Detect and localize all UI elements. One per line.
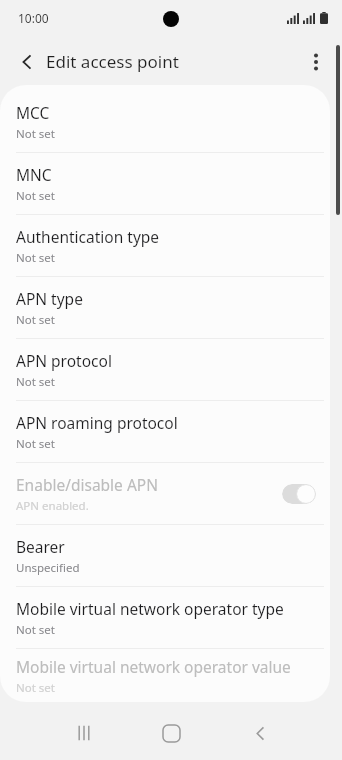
staticText: APN enabled. bbox=[16, 498, 89, 514]
staticText: Not set bbox=[16, 436, 55, 452]
staticText: Bearer bbox=[16, 536, 65, 557]
button[interactable]: APN protocol bbox=[0, 339, 330, 400]
button[interactable]: Mobile virtual network operator value bbox=[0, 649, 330, 702]
staticText: Not set bbox=[16, 312, 55, 328]
staticText: APN roaming protocol bbox=[16, 412, 178, 433]
button[interactable]: More options bbox=[295, 41, 337, 83]
staticText: Not set bbox=[16, 188, 55, 204]
staticText: Edit access point bbox=[46, 50, 179, 73]
staticText: Unspecified bbox=[16, 560, 80, 576]
staticText: Mobile virtual network operator value bbox=[16, 656, 291, 677]
button[interactable]: Mobile virtual network operator type bbox=[0, 587, 330, 648]
staticText: Not set bbox=[16, 680, 55, 696]
button[interactable]: Back bbox=[238, 711, 282, 755]
staticText: Not set bbox=[16, 622, 55, 638]
button[interactable]: Bearer bbox=[0, 525, 330, 586]
button[interactable]: APN type bbox=[0, 277, 330, 338]
staticText: Mobile virtual network operator type bbox=[16, 598, 284, 619]
button[interactable]: Enable or disable APN bbox=[282, 484, 316, 504]
staticText: APN type bbox=[16, 288, 83, 309]
staticText: MCC bbox=[16, 102, 50, 123]
staticText: APN protocol bbox=[16, 350, 112, 371]
button[interactable]: Recent apps bbox=[62, 711, 106, 755]
button[interactable]: Enable/disable APN bbox=[0, 463, 330, 524]
staticText: MNC bbox=[16, 164, 52, 185]
button[interactable]: Home bbox=[149, 711, 193, 755]
staticText: Enable/disable APN bbox=[16, 474, 158, 495]
staticText: Authentication type bbox=[16, 226, 160, 247]
staticText: Not set bbox=[16, 250, 55, 266]
staticText: Not set bbox=[16, 374, 55, 390]
button[interactable]: MCC bbox=[0, 91, 330, 152]
staticText: Not set bbox=[16, 126, 55, 142]
button[interactable]: APN roaming protocol bbox=[0, 401, 330, 462]
staticText: 10:00 bbox=[18, 10, 49, 26]
button[interactable]: Authentication type bbox=[0, 215, 330, 276]
button[interactable]: MNC bbox=[0, 153, 330, 214]
button[interactable]: Back bbox=[6, 41, 48, 83]
